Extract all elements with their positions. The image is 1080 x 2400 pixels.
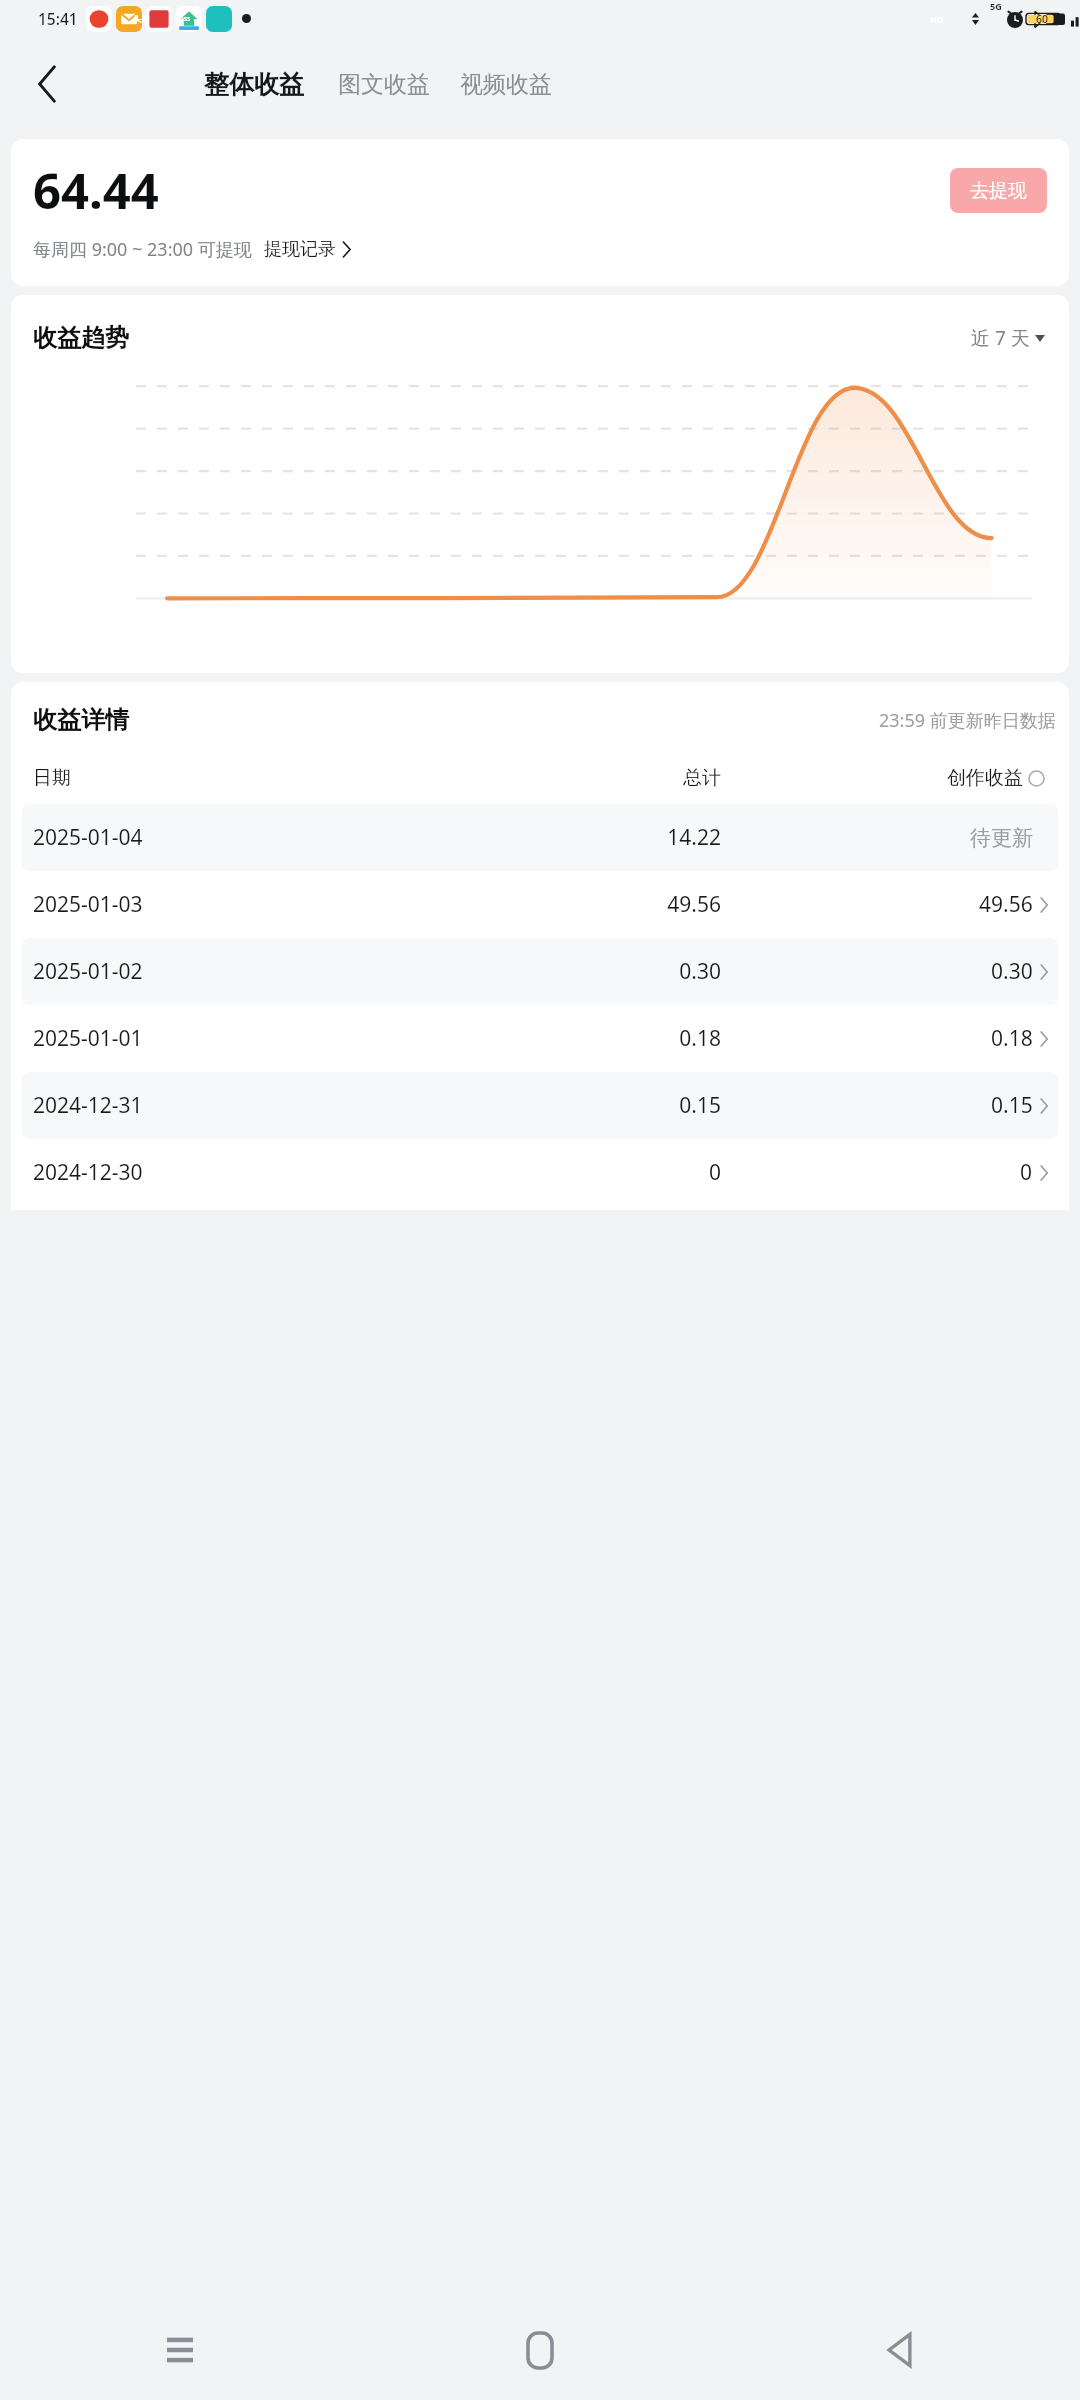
staticText: 2025-01-04 bbox=[33, 823, 386, 852]
staticText: 提现记录 bbox=[264, 238, 336, 261]
staticText: 每周四 9:00 ~ 23:00 可提现 bbox=[33, 237, 252, 262]
staticText: 0.15 bbox=[991, 1091, 1033, 1120]
staticText: 0 bbox=[1020, 1158, 1033, 1187]
staticText: 整体收益 bbox=[204, 69, 304, 100]
button[interactable]: Recents bbox=[0, 2300, 360, 2400]
button[interactable]: Back bbox=[720, 2300, 1080, 2400]
button[interactable]: 去提现 bbox=[950, 168, 1047, 213]
button[interactable]: 2024-12-30 bbox=[22, 1139, 1058, 1206]
staticText: 2025-01-01 bbox=[33, 1024, 386, 1053]
staticText: 待更新 bbox=[970, 825, 1033, 851]
staticText: 14.22 bbox=[386, 823, 721, 852]
staticText: 0.30 bbox=[386, 957, 721, 986]
staticText: 总计 bbox=[386, 766, 721, 790]
staticText: 64.44 bbox=[33, 157, 159, 224]
staticText: 收益详情 bbox=[33, 705, 129, 735]
staticText: 2025-01-02 bbox=[33, 957, 386, 986]
button[interactable]: 提现记录 bbox=[264, 238, 351, 261]
staticText: 23:59 前更新昨日数据 bbox=[879, 708, 1056, 733]
button[interactable]: Home bbox=[360, 2300, 720, 2400]
staticText: 日期 bbox=[33, 766, 386, 790]
staticText: 近 7 天 bbox=[971, 325, 1030, 351]
staticText: 0.18 bbox=[386, 1024, 721, 1053]
staticText: 图文收益 bbox=[338, 70, 430, 99]
staticText: 5G bbox=[990, 0, 1002, 12]
staticText: 49.56 bbox=[979, 890, 1033, 919]
button[interactable]: 视频收益 bbox=[456, 62, 556, 107]
button[interactable]: 2025-01-04 bbox=[22, 804, 1058, 871]
staticText: BOSS bbox=[175, 15, 191, 23]
button[interactable]: 整体收益 bbox=[200, 61, 308, 108]
staticText: 2024-12-30 bbox=[33, 1158, 386, 1187]
staticText: 0.30 bbox=[991, 957, 1033, 986]
staticText: 创作收益 bbox=[947, 766, 1023, 790]
button[interactable]: 2024-12-31 bbox=[22, 1072, 1058, 1139]
button[interactable]: 图文收益 bbox=[334, 62, 434, 107]
staticText: 收益趋势 bbox=[33, 323, 129, 353]
staticText: 视频收益 bbox=[460, 70, 552, 99]
staticText: HD bbox=[930, 13, 944, 25]
staticText: 0.15 bbox=[386, 1091, 721, 1120]
staticText: 2025-01-03 bbox=[33, 890, 386, 919]
staticText: 0.18 bbox=[991, 1024, 1033, 1053]
staticText: 去提现 bbox=[970, 179, 1027, 203]
staticText: 2024-12-31 bbox=[33, 1091, 386, 1120]
button[interactable]: 2025-01-01 bbox=[22, 1005, 1058, 1072]
staticText: 0 bbox=[386, 1158, 721, 1187]
staticText: 头条 bbox=[133, 14, 149, 24]
staticText: 60 bbox=[1036, 12, 1049, 26]
button[interactable]: Back bbox=[20, 56, 76, 112]
button[interactable]: 2025-01-03 bbox=[22, 871, 1058, 938]
staticText: 49.56 bbox=[386, 890, 721, 919]
button[interactable]: 近 7 天 bbox=[967, 321, 1049, 355]
staticText: 15:41 bbox=[38, 8, 78, 29]
button[interactable]: 2025-01-02 bbox=[22, 938, 1058, 1005]
